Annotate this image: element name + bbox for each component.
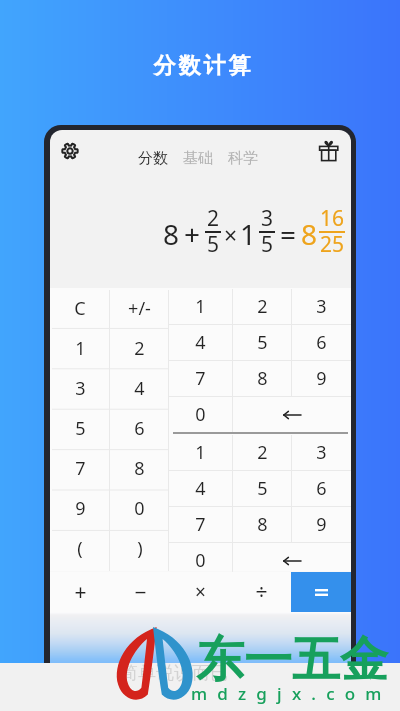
staticText: 6: [316, 476, 327, 501]
button[interactable]: 3: [292, 435, 351, 470]
staticText: 分数计算: [152, 52, 252, 80]
button[interactable]: 0: [169, 543, 232, 578]
button[interactable]: 3: [292, 289, 351, 324]
staticText: 2: [257, 294, 268, 319]
button[interactable]: 4: [110, 368, 169, 408]
button[interactable]: 2: [233, 435, 291, 470]
staticText: 1: [75, 336, 86, 361]
staticText: 1: [195, 294, 206, 319]
staticText: 8: [257, 512, 268, 537]
button[interactable]: Gift: [319, 141, 339, 161]
staticText: 8: [134, 456, 145, 481]
button[interactable]: 6: [292, 325, 351, 360]
button[interactable]: 科学: [224, 144, 262, 173]
button[interactable]: 9: [292, 361, 351, 396]
button[interactable]: C: [50, 288, 110, 328]
staticText: 4: [195, 476, 206, 501]
staticText: 7: [75, 456, 86, 481]
staticText: 0: [195, 402, 206, 427]
staticText: 25: [320, 230, 345, 259]
staticText: 分数: [138, 149, 168, 168]
staticText: 2: [257, 440, 268, 465]
staticText: 8: [163, 215, 180, 253]
staticText: 5: [207, 230, 220, 259]
staticText: 5: [257, 330, 268, 355]
button[interactable]: 6: [292, 471, 351, 506]
button[interactable]: 7: [169, 507, 232, 542]
staticText: ×: [224, 219, 238, 250]
button[interactable]: −: [110, 572, 170, 612]
button[interactable]: 7: [50, 448, 110, 488]
button[interactable]: ): [110, 528, 169, 568]
staticText: 5: [257, 476, 268, 501]
button[interactable]: 8: [233, 361, 291, 396]
staticText: 8: [301, 215, 318, 253]
button[interactable]: 基础: [179, 144, 217, 173]
button[interactable]: 0: [110, 488, 169, 528]
button[interactable]: Backspace: [233, 397, 351, 432]
staticText: 6: [316, 330, 327, 355]
staticText: 3: [75, 376, 86, 401]
button[interactable]: 8: [233, 507, 291, 542]
staticText: 基础: [183, 149, 213, 168]
button[interactable]: 0: [169, 397, 232, 432]
button[interactable]: 9: [292, 507, 351, 542]
staticText: ): [137, 536, 143, 561]
staticText: 9: [75, 496, 86, 521]
button[interactable]: 分数: [134, 144, 172, 173]
staticText: +: [184, 215, 201, 253]
button[interactable]: 9: [50, 488, 110, 528]
button[interactable]: Backspace: [233, 543, 351, 578]
staticText: −: [134, 578, 147, 607]
button[interactable]: 5: [50, 408, 110, 448]
button[interactable]: 8: [110, 448, 169, 488]
staticText: 6: [134, 416, 145, 441]
staticText: 9: [316, 366, 327, 391]
button[interactable]: +/-: [110, 288, 169, 328]
button[interactable]: 2: [233, 289, 291, 324]
staticText: ÷: [255, 578, 268, 607]
staticText: 简单说说而已: [120, 662, 228, 685]
button[interactable]: 1: [169, 435, 232, 470]
staticText: 9: [316, 512, 327, 537]
button[interactable]: 5: [233, 325, 291, 360]
staticText: 2: [134, 336, 145, 361]
button[interactable]: 3: [50, 368, 110, 408]
button[interactable]: 1: [50, 328, 110, 368]
button[interactable]: ÷: [231, 572, 291, 612]
staticText: 5: [261, 230, 274, 259]
button[interactable]: Settings: [60, 141, 80, 161]
button[interactable]: 4: [169, 471, 232, 506]
staticText: ×: [195, 579, 206, 605]
staticText: 0: [134, 496, 145, 521]
button[interactable]: 5: [233, 471, 291, 506]
button[interactable]: 2: [110, 328, 169, 368]
staticText: 1: [240, 215, 257, 253]
staticText: 东一五金: [196, 630, 388, 690]
staticText: 16: [320, 204, 345, 233]
staticText: 3: [316, 440, 327, 465]
staticText: C: [74, 296, 86, 321]
staticText: 7: [195, 512, 206, 537]
button[interactable]: Equals: [291, 572, 351, 612]
staticText: mdzgjx.com: [191, 682, 392, 705]
staticText: 2: [207, 204, 220, 233]
button[interactable]: 1: [169, 289, 232, 324]
staticText: 3: [316, 294, 327, 319]
staticText: =: [280, 215, 297, 253]
staticText: 3: [261, 204, 274, 233]
staticText: +/-: [128, 296, 151, 321]
staticText: 4: [134, 376, 145, 401]
staticText: (: [77, 536, 83, 561]
button[interactable]: (: [50, 528, 110, 568]
button[interactable]: 4: [169, 325, 232, 360]
staticText: 8: [257, 366, 268, 391]
staticText: 5: [75, 416, 86, 441]
button[interactable]: +: [50, 572, 110, 612]
button[interactable]: ×: [170, 572, 231, 612]
staticText: 4: [195, 330, 206, 355]
staticText: 7: [195, 366, 206, 391]
staticText: 0: [195, 548, 206, 573]
button[interactable]: 6: [110, 408, 169, 448]
button[interactable]: 7: [169, 361, 232, 396]
